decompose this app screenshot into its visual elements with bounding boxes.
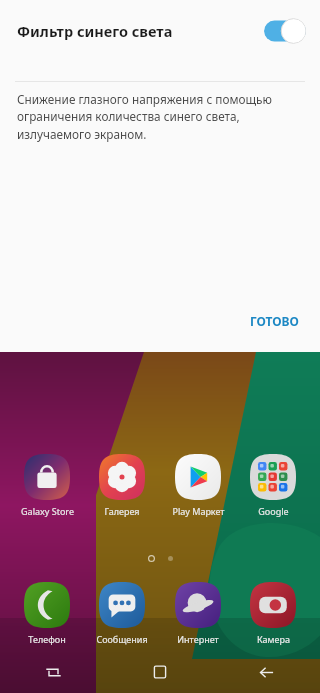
staticText: Интернет — [177, 633, 219, 645]
staticText: ГОТОВО — [250, 313, 299, 329]
button[interactable]: Play Маркет — [163, 452, 233, 519]
staticText: Снижение глазного напряжения с помощью о… — [17, 91, 272, 143]
button[interactable]: Home — [106, 651, 213, 693]
staticText: Фильтр синего света — [17, 21, 173, 41]
button[interactable]: ГОТОВО — [236, 305, 313, 337]
staticText: Play Маркет — [172, 505, 225, 517]
button[interactable]: Back — [213, 651, 320, 693]
button[interactable]: Интернет — [163, 580, 233, 647]
staticText: Телефон — [28, 633, 66, 645]
staticText: Камера — [257, 633, 290, 645]
button[interactable]: Телефон — [12, 580, 82, 647]
button[interactable]: Галерея — [87, 452, 157, 519]
staticText: Сообщения — [96, 633, 148, 645]
button[interactable]: Galaxy Store — [12, 452, 82, 519]
button[interactable]: Recent apps — [0, 651, 106, 693]
staticText: Galaxy Store — [21, 505, 74, 517]
staticText: Google — [258, 505, 289, 517]
button[interactable]: Blue light filter toggle, on — [264, 18, 306, 44]
button[interactable]: Сообщения — [87, 580, 157, 647]
button[interactable]: Камера — [238, 580, 308, 647]
staticText: Галерея — [104, 505, 140, 517]
button[interactable]: Google — [238, 452, 308, 519]
